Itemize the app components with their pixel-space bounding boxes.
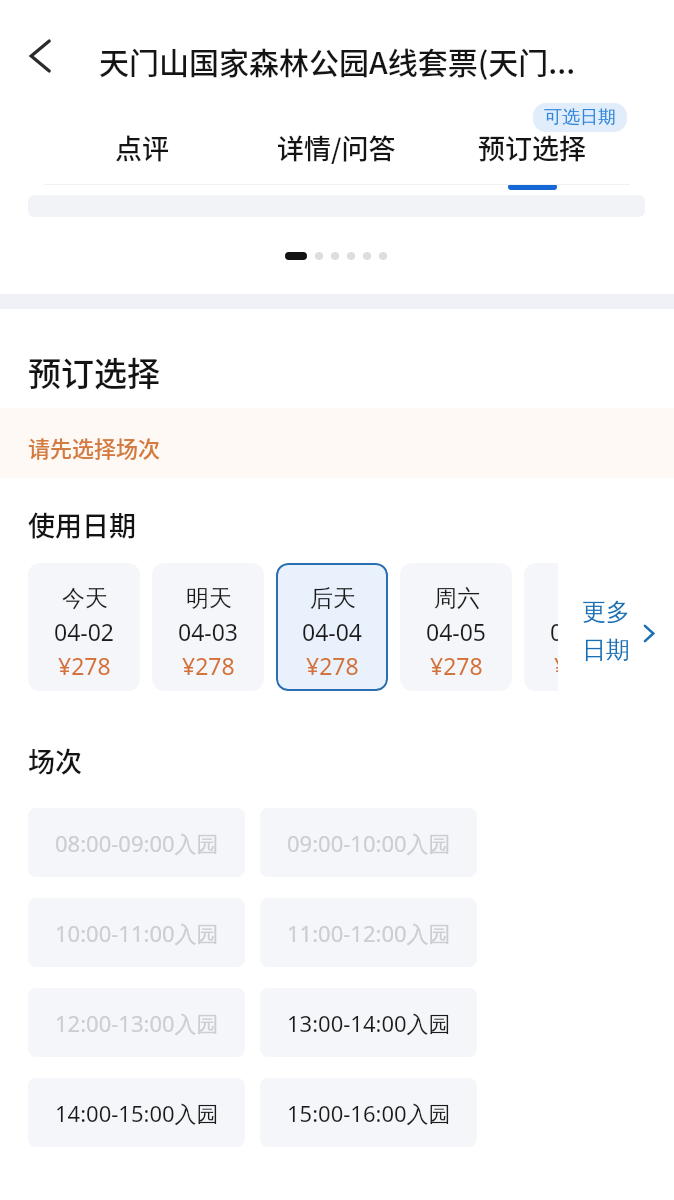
staticText: 04-05 <box>426 616 487 647</box>
staticText: 可选日期 <box>544 106 616 129</box>
staticText: 使用日期 <box>28 505 136 544</box>
button[interactable]: 可选日期 <box>544 106 616 129</box>
button[interactable]: 更多 日期 <box>582 568 655 695</box>
staticText: ¥278 <box>58 650 111 681</box>
staticText: ¥278 <box>306 650 359 681</box>
button[interactable]: 15:00-16:00入园 <box>260 1078 477 1147</box>
button[interactable]: 11:00-12:00入园 <box>260 898 477 967</box>
button[interactable]: 12:00-13:00入园 <box>28 988 245 1057</box>
staticText: 请先选择场次 <box>28 431 161 463</box>
button[interactable]: 08:00-09:00入园 <box>28 808 245 877</box>
staticText: 04-03 <box>178 616 239 647</box>
staticText: ¥278 <box>430 650 483 681</box>
button[interactable]: 今天 <box>28 563 140 691</box>
button[interactable]: 后天 <box>276 563 388 691</box>
staticText: ¥278 <box>182 650 235 681</box>
staticText: 12:00-13:00入园 <box>55 1008 219 1038</box>
staticText: ¥278 <box>554 650 607 681</box>
staticText: 04-02 <box>54 616 115 647</box>
button[interactable]: 点评 <box>62 128 222 200</box>
staticText: 后天 <box>310 584 356 613</box>
button[interactable]: Back <box>16 32 64 80</box>
staticText: 详情/问答 <box>277 128 396 167</box>
staticText: 13:00-14:00入园 <box>287 1008 451 1038</box>
staticText: 09:00-10:00入园 <box>287 828 451 858</box>
staticText: 08:00-09:00入园 <box>55 828 219 858</box>
staticText: 场次 <box>28 741 82 780</box>
staticText: 周日 <box>558 584 604 613</box>
staticText: 04-06 <box>550 616 611 647</box>
button[interactable]: 周六 <box>400 563 512 691</box>
button[interactable]: 详情/问答 <box>256 128 416 200</box>
button[interactable]: 10:00-11:00入园 <box>28 898 245 967</box>
staticText: 明天 <box>186 584 232 613</box>
button[interactable]: 周日 <box>524 563 636 691</box>
button[interactable]: 明天 <box>152 563 264 691</box>
button[interactable]: 预订选择 <box>452 128 612 200</box>
staticText: 11:00-12:00入园 <box>287 918 451 948</box>
staticText: 14:00-15:00入园 <box>55 1098 219 1128</box>
button[interactable]: 14:00-15:00入园 <box>28 1078 245 1147</box>
staticText: 周六 <box>434 584 480 613</box>
staticText: 04-04 <box>302 616 363 647</box>
staticText: 15:00-16:00入园 <box>287 1098 451 1128</box>
staticText: 预订选择 <box>28 348 160 396</box>
button[interactable]: 13:00-14:00入园 <box>260 988 477 1057</box>
staticText: 预订选择 <box>478 128 586 167</box>
staticText: 点评 <box>115 128 169 167</box>
staticText: 今天 <box>62 584 108 613</box>
staticText: 更多 日期 <box>582 597 630 666</box>
staticText: 天门山国家森林公园A线套票(天门... <box>99 39 576 82</box>
button[interactable]: 09:00-10:00入园 <box>260 808 477 877</box>
staticText: 10:00-11:00入园 <box>55 918 219 948</box>
